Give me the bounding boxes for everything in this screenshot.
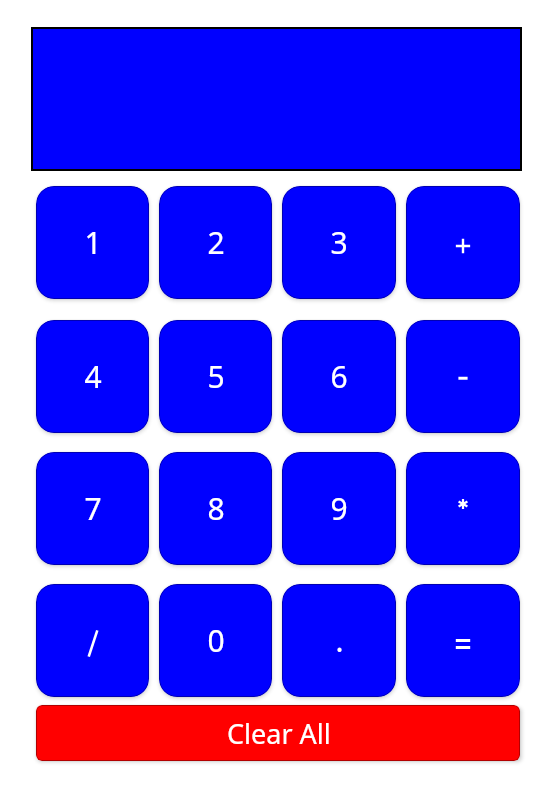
button[interactable]: 8: [159, 452, 272, 565]
button[interactable]: 9: [282, 452, 396, 565]
button[interactable]: 2: [159, 186, 272, 299]
staticText: 6: [330, 356, 348, 397]
button[interactable]: Clear All: [36, 705, 520, 761]
button[interactable]: Minus: [406, 320, 520, 433]
staticText: Clear All: [227, 715, 331, 752]
button[interactable]: 0: [159, 584, 272, 697]
staticText: 5: [207, 356, 225, 397]
staticText: 4: [84, 356, 102, 397]
button[interactable]: 4: [36, 320, 149, 433]
button[interactable]: Divide: [36, 584, 149, 697]
button[interactable]: Plus: [406, 186, 520, 299]
staticText: 0: [207, 620, 225, 661]
button[interactable]: 6: [282, 320, 396, 433]
staticText: 1: [84, 222, 102, 263]
staticText: 2: [207, 222, 225, 263]
button[interactable]: Equals: [406, 584, 520, 697]
button[interactable]: 1: [36, 186, 149, 299]
button[interactable]: 5: [159, 320, 272, 433]
button[interactable]: 3: [282, 186, 396, 299]
staticText: .: [335, 620, 344, 661]
staticText: 3: [330, 222, 348, 263]
staticText: 9: [330, 488, 348, 529]
button[interactable]: 7: [36, 452, 149, 565]
staticText: 7: [84, 488, 102, 529]
button[interactable]: .: [282, 584, 396, 697]
staticText: 8: [207, 488, 225, 529]
button[interactable]: Multiply: [406, 452, 520, 565]
